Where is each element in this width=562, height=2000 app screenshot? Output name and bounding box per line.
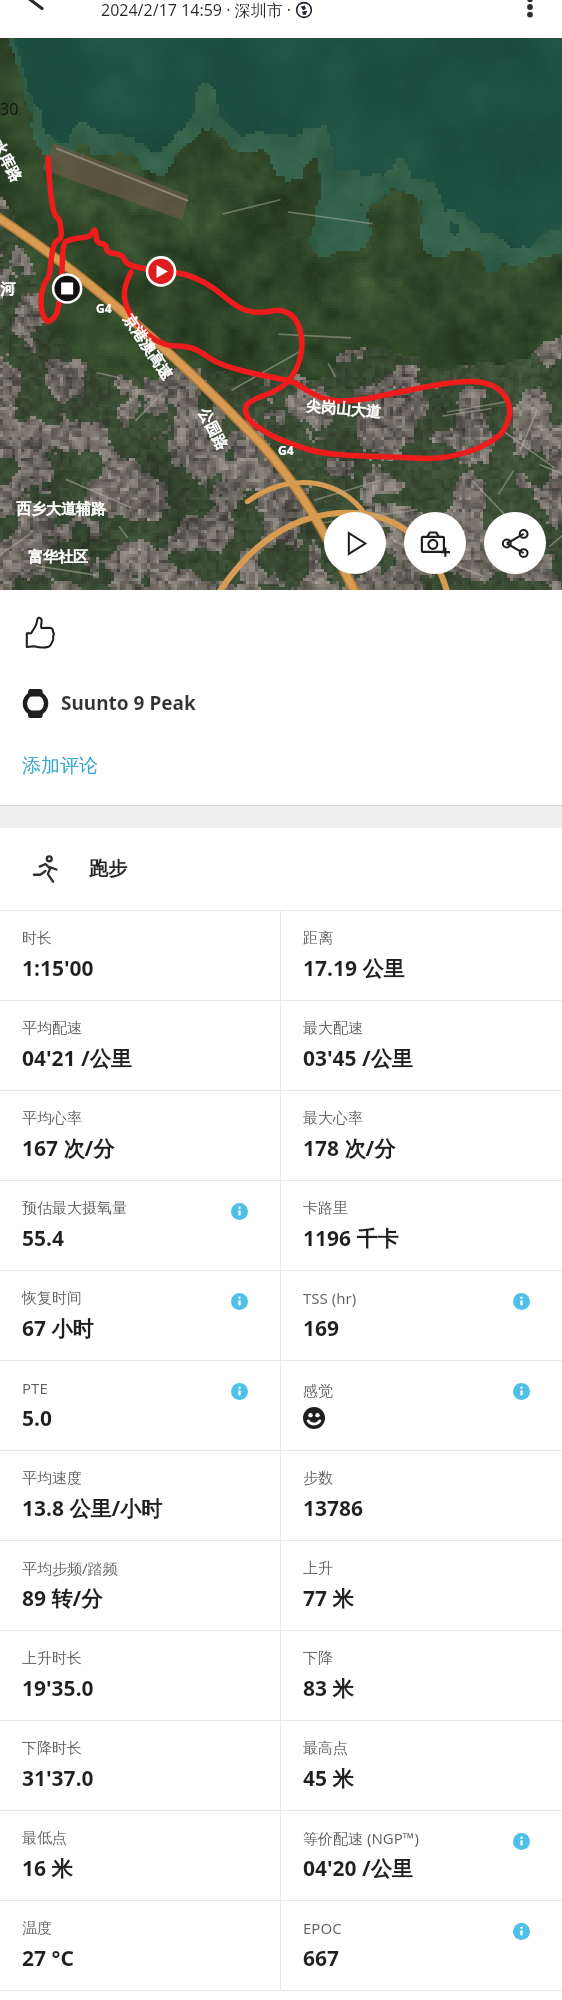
button[interactable]: PTE [0, 1361, 280, 1450]
staticText: TSS (hr) [303, 1288, 357, 1308]
staticText: 上升 [303, 1559, 333, 1578]
button[interactable]: 等价配速 (NGP™) [281, 1811, 562, 1900]
button[interactable]: 恢复时间 [0, 1271, 280, 1360]
button[interactable]: Back [0, 0, 60, 38]
button[interactable]: 最大配速 [281, 1001, 562, 1090]
staticText: 03'45 /公里 [303, 1044, 413, 1073]
staticText: 水库路 [0, 137, 25, 186]
button[interactable]: 上升时长 [0, 1631, 280, 1720]
staticText: 04'20 /公里 [303, 1854, 413, 1883]
staticText: 温度 [22, 1919, 52, 1938]
button[interactable]: 下降 [281, 1631, 562, 1720]
staticText: G4 [96, 300, 112, 316]
staticText: 上升时长 [22, 1649, 82, 1668]
staticText: 下降 [303, 1649, 333, 1668]
staticText: 距离 [303, 929, 333, 948]
button[interactable]: 添加评论 [22, 749, 98, 783]
staticText: 恢复时间 [22, 1289, 82, 1308]
staticText: 167 次/分 [22, 1134, 115, 1163]
staticText: 67 小时 [22, 1314, 94, 1343]
staticText: 16 米 [22, 1854, 73, 1883]
staticText: 最高点 [303, 1739, 348, 1758]
staticText: 最大心率 [303, 1109, 363, 1128]
staticText: 步数 [303, 1469, 333, 1488]
button[interactable]: 平均配速 [0, 1001, 280, 1090]
staticText: 169 [303, 1314, 340, 1343]
staticText: 平均速度 [22, 1469, 82, 1488]
staticText: 平均心率 [22, 1109, 82, 1128]
button[interactable]: More options [506, 0, 562, 38]
staticText: 04'21 /公里 [22, 1044, 132, 1073]
button[interactable]: 步数 [281, 1451, 562, 1540]
staticText: 5.0 [22, 1404, 52, 1433]
staticText: PTE [22, 1378, 48, 1398]
staticText: 13.8 公里/小时 [22, 1494, 163, 1523]
button[interactable]: Share [484, 512, 546, 574]
staticText: 30 [0, 98, 19, 120]
staticText: 27 °C [22, 1944, 74, 1973]
staticText: Suunto 9 Peak [61, 690, 196, 716]
staticText: 667 [303, 1944, 340, 1973]
staticText: 13786 [303, 1494, 364, 1523]
staticText: 83 米 [303, 1674, 354, 1703]
button[interactable]: 卡路里 [281, 1181, 562, 1270]
button[interactable]: Suunto 9 Peak [21, 681, 562, 725]
staticText: EPOC [303, 1918, 342, 1938]
staticText: 17.19 公里 [303, 954, 405, 983]
button[interactable]: 预估最大摄氧量 [0, 1181, 280, 1270]
staticText: 178 次/分 [303, 1134, 396, 1163]
staticText: 19'35.0 [22, 1674, 94, 1703]
button[interactable]: EPOC [281, 1901, 562, 1990]
button[interactable]: 最大心率 [281, 1091, 562, 1180]
staticText: G4 [278, 442, 294, 458]
staticText: 西乡大道辅路 [16, 500, 106, 519]
button[interactable]: Add photo [404, 512, 466, 574]
staticText: 下降时长 [22, 1739, 82, 1758]
staticText: 添加评论 [22, 754, 98, 778]
staticText: 1:15'00 [22, 954, 94, 983]
button[interactable]: 距离 [281, 911, 562, 1000]
staticText: 时长 [22, 929, 52, 948]
staticText: 感觉 [303, 1382, 333, 1401]
button[interactable]: 最高点 [281, 1721, 562, 1810]
staticText: 45 米 [303, 1764, 354, 1793]
staticText: 富华社区 [28, 548, 88, 567]
staticText: 最大配速 [303, 1019, 363, 1038]
button[interactable]: 下降时长 [0, 1721, 280, 1810]
staticText: 55.4 [22, 1224, 64, 1253]
staticText: 平均配速 [22, 1019, 82, 1038]
button[interactable]: 时长 [0, 911, 280, 1000]
staticText: 1196 千卡 [303, 1224, 399, 1253]
button[interactable]: 平均心率 [0, 1091, 280, 1180]
staticText: 河 [0, 280, 15, 299]
staticText: 京港澳高速 [119, 311, 176, 384]
button[interactable]: 上升 [281, 1541, 562, 1630]
button[interactable]: 最低点 [0, 1811, 280, 1900]
staticText: 2024/2/17 14:59 · 深圳市 · [101, 0, 296, 21]
button[interactable]: 跑步 [31, 828, 562, 910]
staticText: 89 转/分 [22, 1584, 103, 1613]
staticText: 跑步 [89, 857, 127, 881]
staticText: 卡路里 [303, 1199, 348, 1218]
button[interactable]: 感觉 [281, 1361, 562, 1450]
staticText: 公园路 [193, 405, 231, 454]
staticText: 预估最大摄氧量 [22, 1199, 127, 1218]
staticText: 77 米 [303, 1584, 354, 1613]
button[interactable]: Like [16, 610, 64, 658]
staticText: 尖岗山大道 [305, 397, 382, 422]
staticText: 平均步频/踏频 [22, 1558, 118, 1578]
staticText: 等价配速 (NGP™) [303, 1828, 419, 1848]
button[interactable]: 温度 [0, 1901, 280, 1990]
button[interactable]: TSS (hr) [281, 1271, 562, 1360]
button[interactable]: 平均速度 [0, 1451, 280, 1540]
button[interactable]: Play [324, 512, 386, 574]
staticText: 最低点 [22, 1829, 67, 1848]
button[interactable]: 平均步频/踏频 [0, 1541, 280, 1630]
staticText: 31'37.0 [22, 1764, 94, 1793]
